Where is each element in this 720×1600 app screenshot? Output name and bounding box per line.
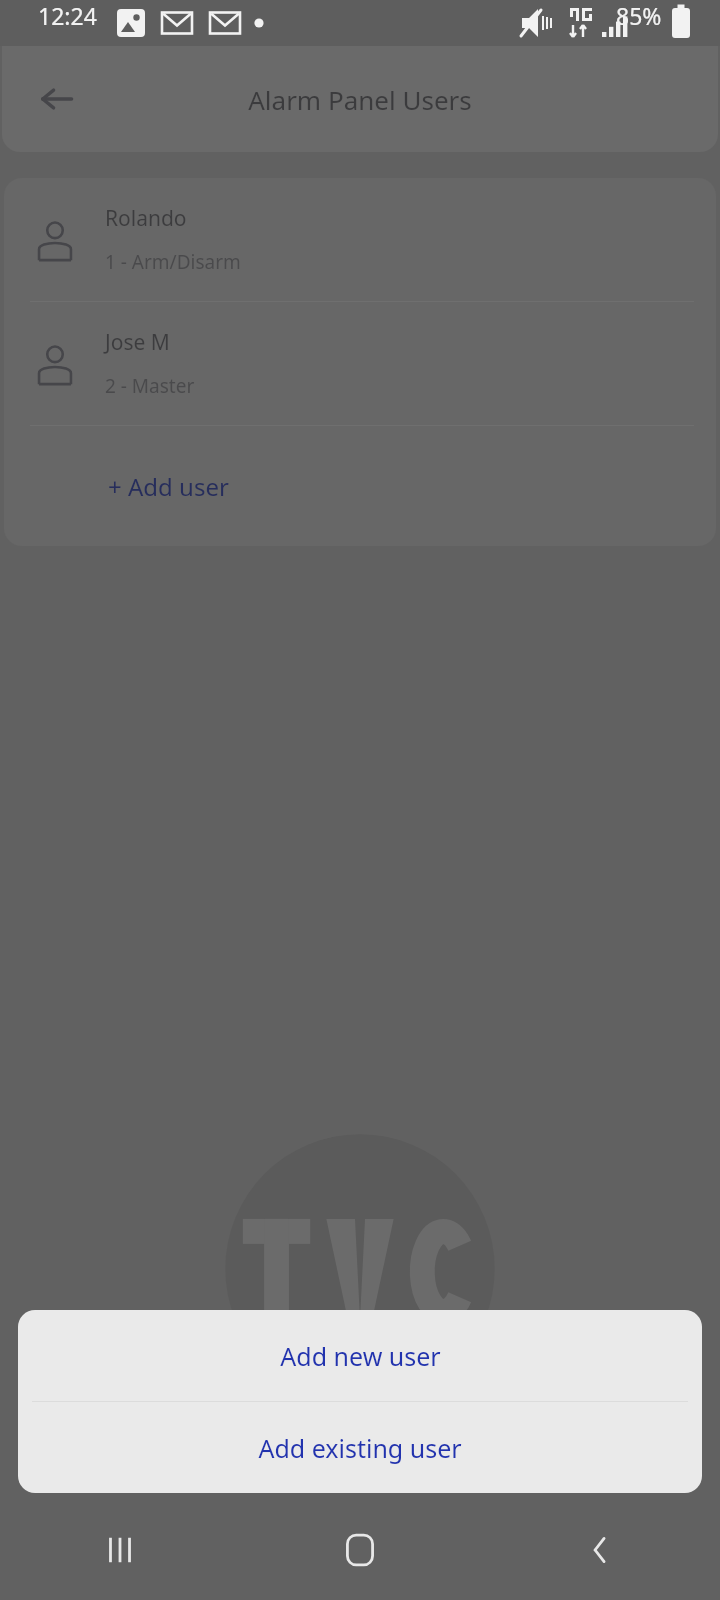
staticText: 2 - Master bbox=[105, 373, 195, 399]
button[interactable]: Home bbox=[0, 1500, 720, 1600]
staticText: Add existing user bbox=[258, 1431, 462, 1465]
button[interactable]: + Add user bbox=[4, 426, 716, 546]
staticText: 85% bbox=[616, 0, 662, 31]
button[interactable]: Jose M bbox=[4, 302, 716, 425]
staticText: 1 - Arm/Disarm bbox=[105, 249, 241, 275]
staticText: + Add user bbox=[108, 470, 229, 503]
button[interactable]: Back bbox=[480, 1500, 720, 1600]
staticText: Add new user bbox=[280, 1339, 441, 1373]
button[interactable]: Add new user bbox=[18, 1310, 702, 1401]
button[interactable]: Add existing user bbox=[18, 1402, 702, 1493]
staticText: 12:24 bbox=[38, 0, 97, 31]
button[interactable]: Back bbox=[21, 63, 93, 135]
staticText: Rolando bbox=[105, 204, 187, 233]
button[interactable]: Recent apps bbox=[0, 1500, 240, 1600]
staticText: Alarm Panel Users bbox=[248, 82, 472, 117]
staticText: Jose M bbox=[105, 328, 170, 357]
button[interactable]: Rolando bbox=[4, 178, 716, 301]
